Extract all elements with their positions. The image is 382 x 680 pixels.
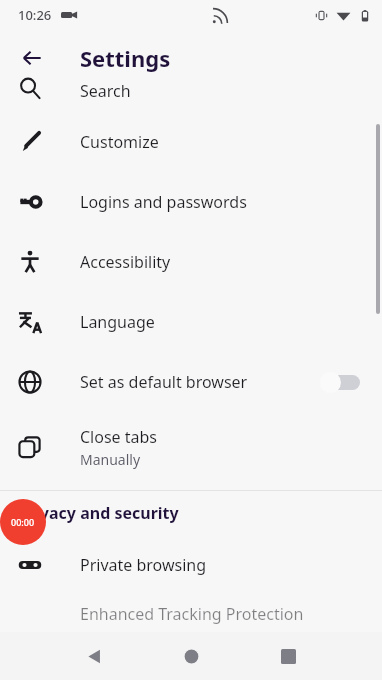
- button[interactable]: Search: [0, 86, 382, 112]
- staticText: Enhanced Tracking Protection: [80, 603, 304, 625]
- button[interactable]: Recent apps: [266, 634, 310, 678]
- button[interactable]: [320, 371, 360, 393]
- button[interactable]: Set as default browser: [0, 352, 382, 412]
- staticText: Search: [80, 80, 131, 102]
- staticText: Settings: [80, 43, 171, 73]
- button[interactable]: Customize: [0, 112, 382, 172]
- button[interactable]: Language: [0, 292, 382, 352]
- staticText: Customize: [80, 131, 159, 153]
- button[interactable]: Close tabs: [0, 412, 382, 482]
- staticText: Set as default browser: [80, 371, 248, 393]
- staticText: Logins and passwords: [80, 191, 247, 213]
- button[interactable]: Enhanced Tracking Protection: [0, 595, 382, 632]
- staticText: Language: [80, 311, 155, 333]
- button[interactable]: Logins and passwords: [0, 172, 382, 232]
- button[interactable]: Back: [8, 34, 56, 82]
- button[interactable]: Home: [169, 634, 213, 678]
- button[interactable]: Back: [72, 634, 116, 678]
- staticText: Close tabs: [80, 426, 158, 448]
- staticText: 10:26: [18, 6, 52, 24]
- staticText: Accessibility: [80, 251, 171, 273]
- staticText: Private browsing: [80, 554, 207, 576]
- staticText: 00:00: [11, 516, 35, 528]
- staticText: Privacy and security: [18, 502, 179, 524]
- button[interactable]: Accessibility: [0, 232, 382, 292]
- button[interactable]: Private browsing: [0, 535, 382, 595]
- staticText: Manually: [80, 450, 141, 469]
